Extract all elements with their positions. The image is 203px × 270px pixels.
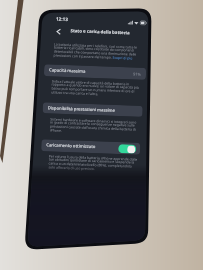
button[interactable]: Indietro [52,25,64,37]
button[interactable]: Caricamento ottimizzato [41,139,140,155]
staticText: Disponibilità prestazioni massime [48,105,116,114]
staticText: La batteria utilizzata per i telefoni, c… [54,41,137,61]
staticText: 12:13 [56,16,68,22]
staticText: Stato e carica della batteria [70,27,130,35]
staticText: Indica l'attuale valore di capacità dell… [51,78,140,98]
button[interactable]: Disponibilità prestazioni massime [42,102,143,117]
button[interactable]: Capacità massima [44,64,146,80]
staticText: Sistemi hardware e software dinamici si … [50,116,137,136]
staticText: Per ridurre l'usura della batteria, iPho… [48,153,138,173]
staticText: Caricamento ottimizzato [46,142,96,150]
staticText: 91% [133,71,141,77]
button[interactable]: Caricamento ottimizzato [118,144,136,154]
staticText: Capacità massima [49,67,86,75]
